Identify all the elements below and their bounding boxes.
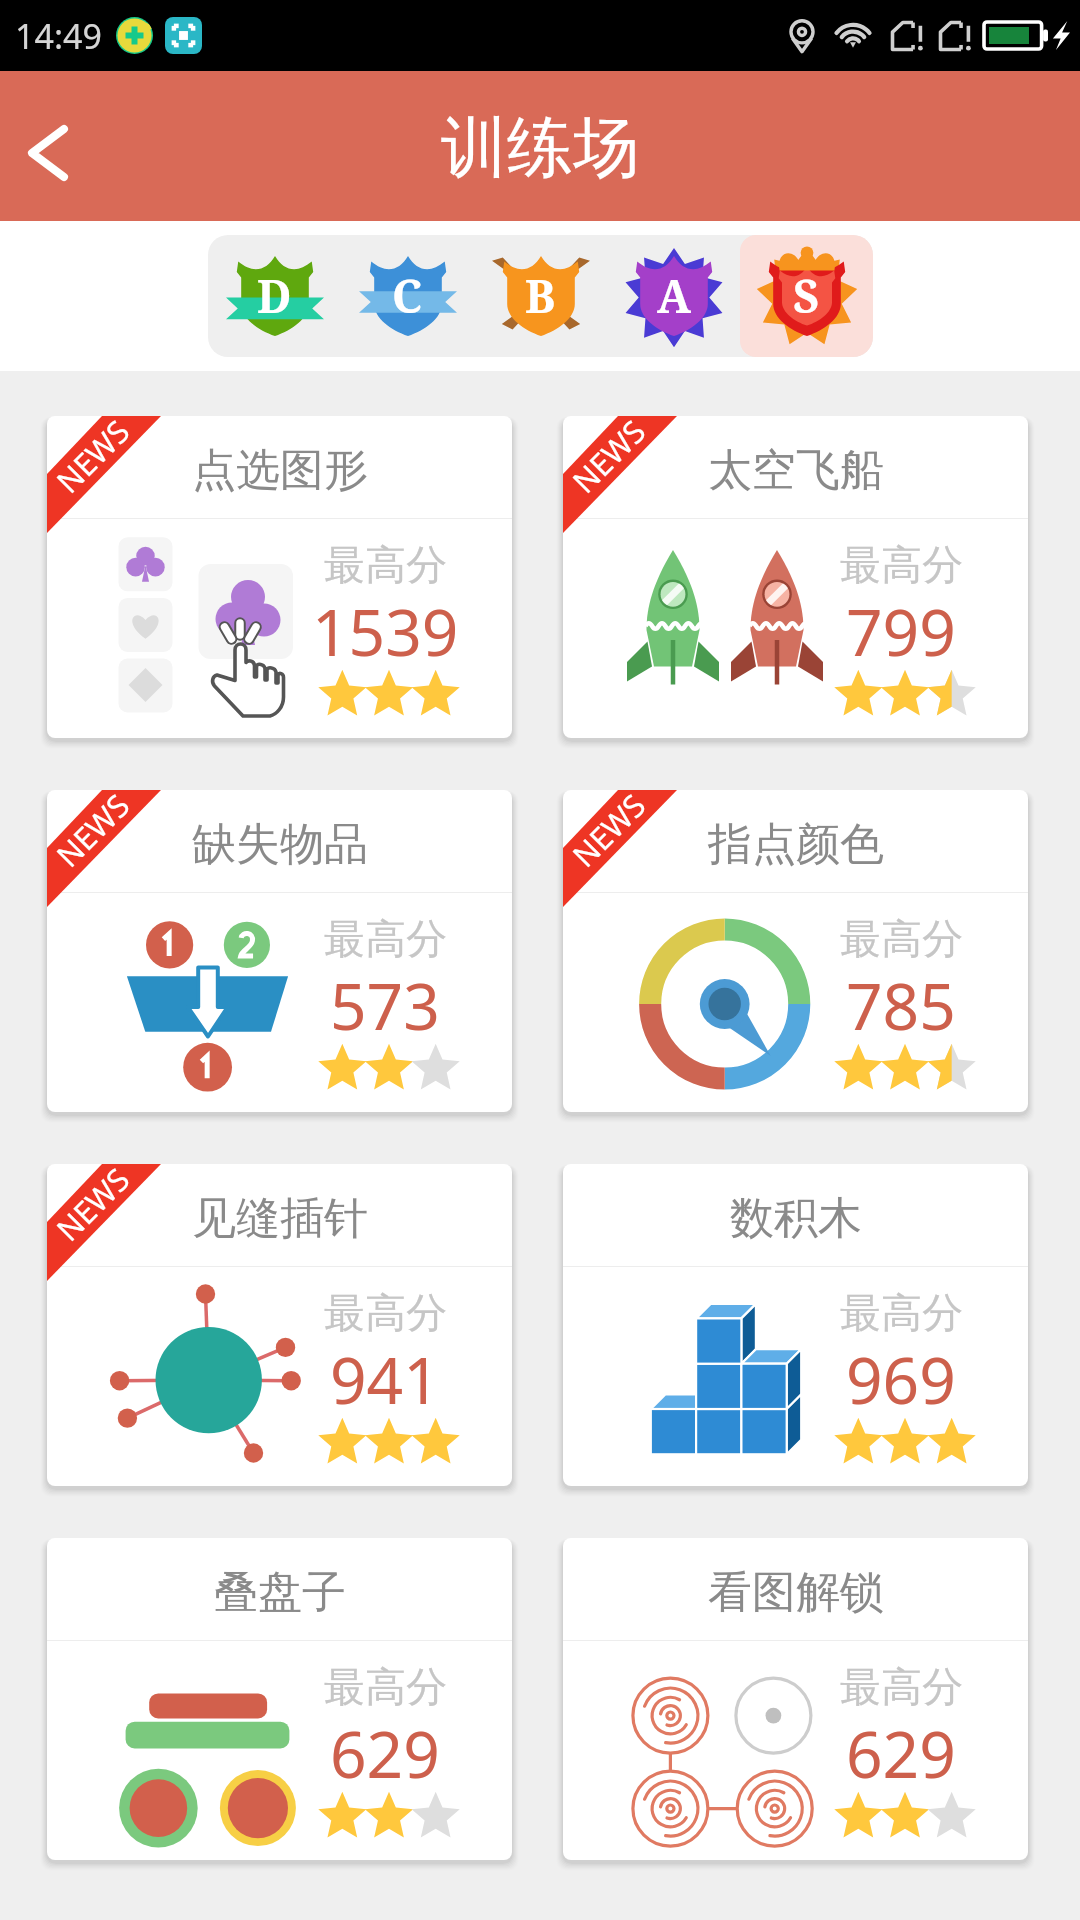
staticText: 629 bbox=[330, 1710, 440, 1797]
staticText: 最高分 bbox=[324, 540, 447, 592]
staticText: 最高分 bbox=[324, 914, 447, 966]
staticText: B bbox=[525, 265, 556, 326]
button[interactable]: D bbox=[208, 235, 341, 357]
staticText: NEWS bbox=[47, 416, 138, 502]
button[interactable]: 看图解锁 bbox=[563, 1538, 1028, 1860]
button[interactable]: 见缝插针 bbox=[47, 1164, 512, 1486]
staticText: 指点颜色 bbox=[708, 817, 884, 872]
staticText: 629 bbox=[846, 1710, 956, 1797]
staticText: 最高分 bbox=[840, 914, 963, 966]
button[interactable]: Back bbox=[0, 71, 96, 221]
staticText: 缺失物品 bbox=[192, 817, 368, 872]
button[interactable]: 点选图形 bbox=[47, 416, 512, 738]
staticText: 训练场 bbox=[441, 106, 639, 189]
staticText: S bbox=[793, 265, 820, 326]
staticText: NEWS bbox=[47, 790, 138, 876]
button[interactable]: S bbox=[740, 235, 873, 357]
button[interactable]: A bbox=[607, 235, 740, 357]
staticText: 见缝插针 bbox=[192, 1191, 368, 1246]
button[interactable]: 数积木 bbox=[563, 1164, 1028, 1486]
button[interactable]: 叠盘子 bbox=[47, 1538, 512, 1860]
staticText: 573 bbox=[330, 962, 440, 1049]
staticText: 叠盘子 bbox=[214, 1565, 346, 1620]
button[interactable]: 指点颜色 bbox=[563, 790, 1028, 1112]
button[interactable]: C bbox=[341, 235, 474, 357]
staticText: 799 bbox=[846, 588, 956, 675]
staticText: NEWS bbox=[47, 1164, 138, 1250]
staticText: 数积木 bbox=[730, 1191, 862, 1246]
staticText: A bbox=[657, 265, 691, 326]
button[interactable]: B bbox=[474, 235, 607, 357]
staticText: 最高分 bbox=[840, 1288, 963, 1340]
button[interactable]: 太空飞船 bbox=[563, 416, 1028, 738]
staticText: 1539 bbox=[312, 588, 459, 675]
staticText: 969 bbox=[846, 1336, 956, 1423]
staticText: C bbox=[392, 265, 423, 326]
staticText: 最高分 bbox=[324, 1288, 447, 1340]
staticText: 点选图形 bbox=[192, 443, 368, 498]
staticText: 最高分 bbox=[840, 540, 963, 592]
staticText: 最高分 bbox=[840, 1662, 963, 1714]
staticText: NEWS bbox=[563, 416, 654, 502]
staticText: D bbox=[257, 265, 292, 326]
staticText: 941 bbox=[330, 1336, 440, 1423]
staticText: 太空飞船 bbox=[708, 443, 884, 498]
staticText: 看图解锁 bbox=[708, 1565, 884, 1620]
staticText: 最高分 bbox=[324, 1662, 447, 1714]
staticText: 14:49 bbox=[15, 13, 102, 59]
staticText: NEWS bbox=[563, 790, 654, 876]
button[interactable]: 缺失物品 bbox=[47, 790, 512, 1112]
staticText: 785 bbox=[846, 962, 956, 1049]
